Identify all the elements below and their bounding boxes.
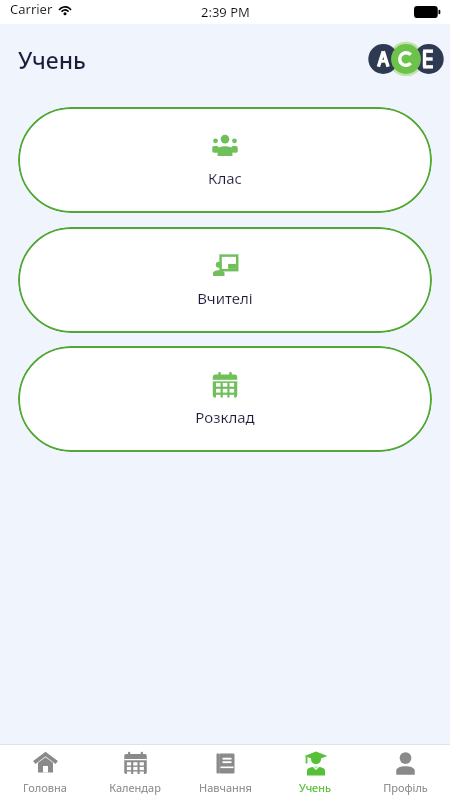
button[interactable]: Календар xyxy=(90,745,180,800)
staticText: Навчання xyxy=(199,780,252,795)
button[interactable]: Профіль xyxy=(360,745,450,800)
staticText: Carrier xyxy=(10,0,53,18)
button[interactable]: Клас xyxy=(18,107,432,213)
staticText: Клас xyxy=(208,168,242,188)
staticText: Учень xyxy=(299,780,331,795)
button[interactable]: Головна xyxy=(0,745,90,800)
button[interactable]: Розклад xyxy=(18,346,432,452)
button[interactable]: Вчителі xyxy=(18,227,432,333)
staticText: Профіль xyxy=(383,780,428,795)
staticText: Розклад xyxy=(195,407,255,427)
staticText: 2:39 PM xyxy=(201,3,250,21)
staticText: Календар xyxy=(109,780,161,795)
button[interactable]: Учень xyxy=(270,745,360,800)
staticText: Вчителі xyxy=(197,288,253,308)
staticText: Головна xyxy=(23,780,67,795)
button[interactable]: ACE logo xyxy=(375,42,437,76)
button[interactable]: Навчання xyxy=(180,745,270,800)
staticText: Учень xyxy=(18,44,86,75)
